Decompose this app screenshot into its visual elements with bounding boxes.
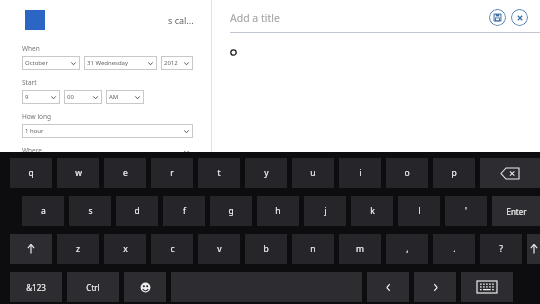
staticText: d [134, 205, 140, 217]
staticText: e [123, 167, 128, 179]
button[interactable]: Shift [527, 234, 540, 264]
button[interactable]: c [151, 234, 193, 264]
staticText: q [28, 167, 34, 179]
staticText: l [418, 205, 421, 217]
button[interactable]: t [198, 158, 240, 188]
staticText: ? [499, 243, 503, 255]
staticText: ' [465, 205, 467, 217]
button[interactable]: n [292, 234, 334, 264]
button[interactable]: z [57, 234, 99, 264]
staticText: Where [22, 146, 42, 152]
staticText: b [263, 243, 269, 255]
button[interactable]: k [351, 196, 393, 226]
button[interactable]: Ctrl [67, 272, 119, 302]
staticText: v [217, 243, 222, 255]
button[interactable]: a [22, 196, 64, 226]
staticText: t [217, 167, 221, 179]
button[interactable]: Hide keyboard [461, 272, 513, 302]
button[interactable]: 31 Wednesday [84, 56, 157, 70]
staticText: a [41, 205, 46, 217]
staticText: g [228, 205, 234, 217]
staticText: AM [109, 93, 119, 101]
button[interactable]: October [22, 56, 80, 70]
staticText: October [25, 59, 48, 67]
staticText: When [22, 44, 40, 53]
button[interactable]: 2012 [161, 56, 193, 70]
staticText: m [356, 243, 364, 255]
staticText: s [88, 205, 93, 217]
button[interactable]: i [339, 158, 381, 188]
staticText: Add a title [230, 11, 280, 25]
button[interactable]: Enter [492, 196, 540, 226]
button[interactable]: j [304, 196, 346, 226]
staticText: n [310, 243, 316, 255]
button[interactable]: y [245, 158, 287, 188]
button[interactable]: w [57, 158, 99, 188]
button[interactable]: s [69, 196, 111, 226]
button[interactable]: Backspace [480, 158, 540, 188]
button[interactable]: ' [445, 196, 487, 226]
staticText: z [76, 243, 80, 255]
button[interactable]: Close [511, 9, 528, 26]
button[interactable]: &123 [10, 272, 62, 302]
staticText: f [183, 205, 186, 217]
staticText: i [359, 167, 362, 179]
button[interactable]: Left [367, 272, 409, 302]
staticText: u [310, 167, 316, 179]
staticText: &123 [26, 282, 46, 293]
button[interactable]: . [433, 234, 475, 264]
staticText: . [453, 243, 456, 255]
staticText: Enter [506, 206, 527, 217]
staticText: h [275, 205, 281, 217]
button[interactable]: x [104, 234, 146, 264]
button[interactable]: f [163, 196, 205, 226]
button[interactable]: h [257, 196, 299, 226]
staticText: 31 Wednesday [87, 59, 129, 67]
button[interactable]: v [198, 234, 240, 264]
button[interactable]: b [245, 234, 287, 264]
staticText: Ctrl [86, 282, 100, 293]
staticText: j [324, 205, 327, 217]
button[interactable]: AM [106, 90, 144, 104]
button[interactable]: , [386, 234, 428, 264]
staticText: c [170, 243, 175, 255]
button[interactable]: 9 [22, 90, 60, 104]
button[interactable]: e [104, 158, 146, 188]
staticText: 1 hour [25, 127, 44, 135]
button[interactable]: d [116, 196, 158, 226]
staticText: w [75, 167, 82, 179]
button[interactable]: Save [489, 9, 506, 26]
staticText: , [406, 243, 409, 255]
button[interactable]: ? [480, 234, 522, 264]
staticText: How long [22, 112, 52, 121]
staticText: k [370, 205, 375, 217]
button[interactable]: 1 hour [22, 124, 193, 138]
staticText: p [451, 167, 457, 179]
staticText: y [264, 167, 269, 179]
button[interactable]: Emoji [124, 272, 166, 302]
button[interactable]: Right [414, 272, 456, 302]
button[interactable]: m [339, 234, 381, 264]
button[interactable]: 00 [64, 90, 102, 104]
staticText: r [170, 167, 174, 179]
staticText: 9 [25, 93, 29, 101]
staticText: 2012 [164, 59, 178, 67]
staticText: 00 [67, 93, 74, 101]
staticText: x [123, 243, 128, 255]
button[interactable]: u [292, 158, 334, 188]
button[interactable]: l [398, 196, 440, 226]
staticText: Start [22, 78, 37, 87]
button[interactable]: p [433, 158, 475, 188]
button[interactable]: g [210, 196, 252, 226]
button[interactable]: r [151, 158, 193, 188]
button[interactable]: Shift [10, 234, 52, 264]
button[interactable]: q [10, 158, 52, 188]
button[interactable]: o [386, 158, 428, 188]
staticText: o [404, 167, 410, 179]
staticText: s cal... [168, 14, 194, 26]
